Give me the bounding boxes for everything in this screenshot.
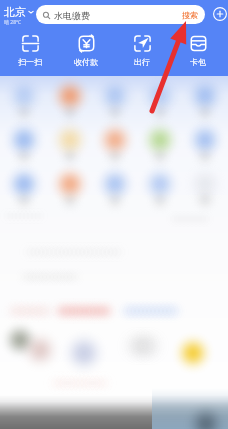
button[interactable]: 出行 — [116, 34, 168, 67]
staticText: 晴 28℃ — [4, 19, 21, 26]
button[interactable]: 水电缴费 — [36, 5, 205, 24]
staticText: 卡包 — [190, 57, 206, 67]
staticText: 搜索 — [182, 10, 198, 20]
staticText: 出行 — [134, 57, 150, 67]
button[interactable]: 搜索 — [179, 8, 201, 22]
button[interactable]: 北京 — [4, 5, 34, 26]
staticText: 北京 — [4, 5, 26, 19]
staticText: 收付款 — [74, 57, 98, 67]
staticText: 扫一扫 — [18, 57, 42, 67]
button[interactable]: 扫一扫 — [4, 34, 56, 67]
button[interactable]: Add — [211, 5, 228, 23]
button[interactable]: 收付款 — [60, 34, 112, 67]
button[interactable]: 卡包 — [172, 34, 224, 67]
staticText: 水电缴费 — [54, 10, 90, 21]
